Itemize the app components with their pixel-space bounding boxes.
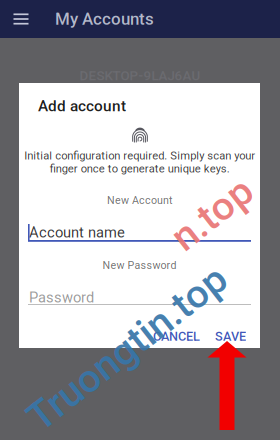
staticText: Truongtin.top (6, 325, 247, 371)
staticText: n.top (166, 191, 257, 237)
staticText: Password (29, 289, 94, 306)
staticText: CANCEL (153, 329, 200, 344)
staticText: Add account (38, 97, 126, 115)
staticText: My Accounts (55, 9, 154, 29)
staticText: Initial configuration required. Simply s… (24, 149, 255, 175)
staticText: SAVE (215, 329, 246, 344)
staticText: New Account (107, 194, 172, 206)
button[interactable]: SAVE (207, 321, 254, 352)
staticText: Account name (29, 224, 125, 241)
staticText: New Password (102, 259, 176, 271)
staticText: DESKTOP-9LAJ6AU (79, 68, 200, 84)
button[interactable]: Menu (3, 0, 39, 38)
button[interactable]: CANCEL (145, 321, 208, 352)
